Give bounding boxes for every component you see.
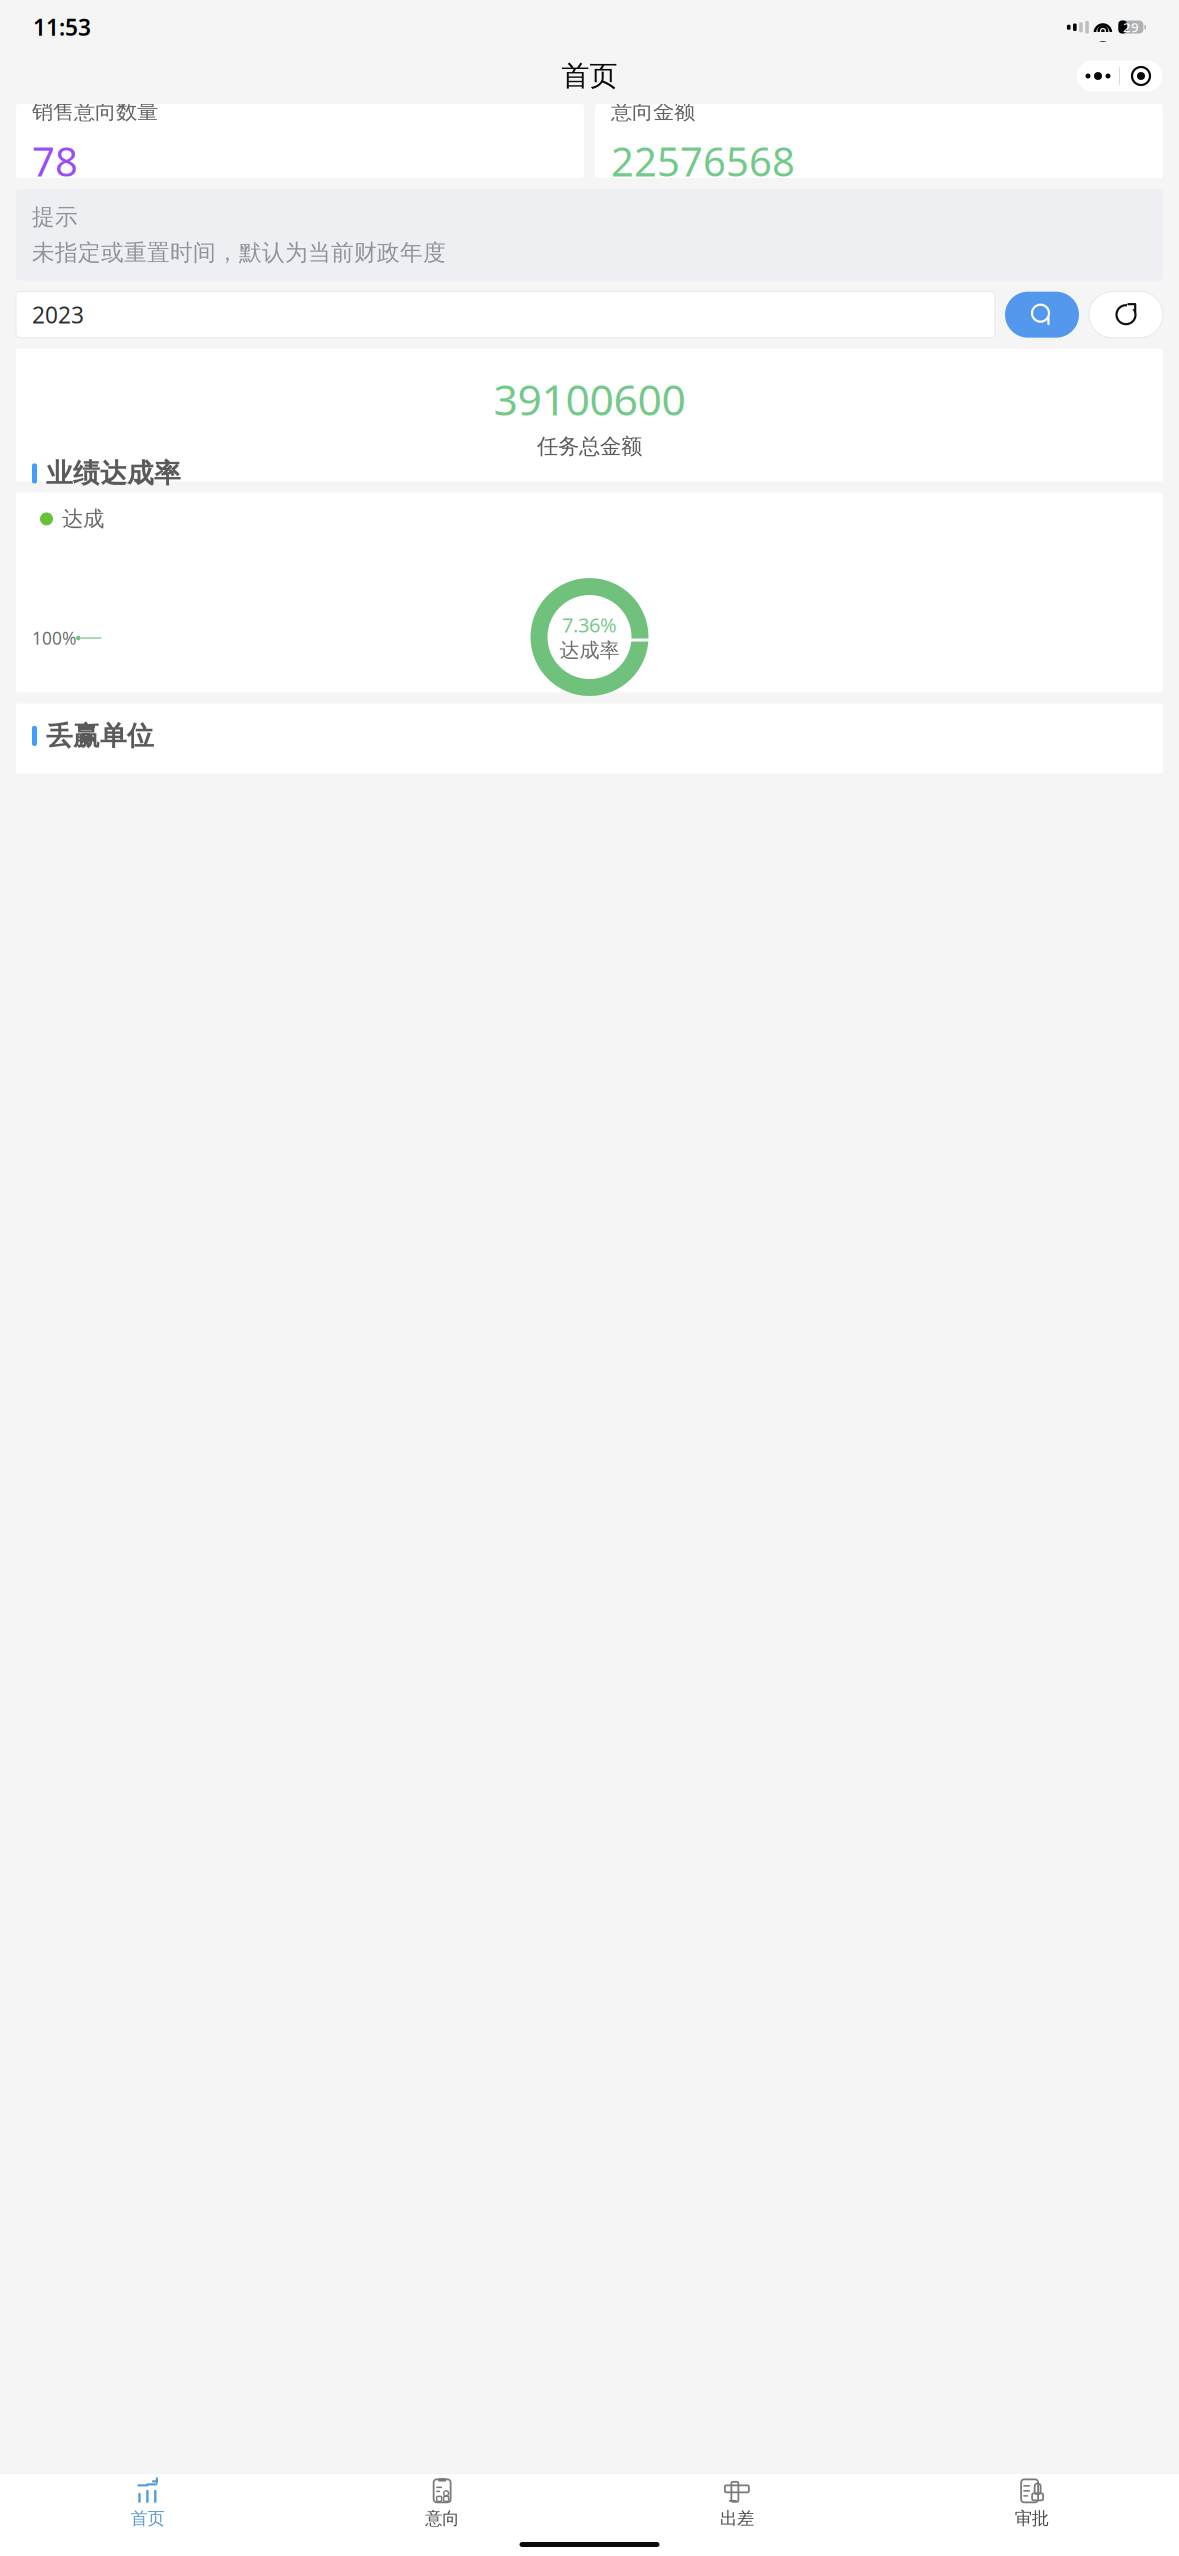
button[interactable]: Refresh: [1089, 292, 1163, 338]
staticText: 销售意向数量: [32, 98, 158, 124]
button[interactable]: 2023: [16, 292, 995, 338]
button[interactable]: 审批: [884, 2478, 1179, 2528]
staticText: 意向: [425, 2508, 459, 2529]
staticText: 达成: [62, 506, 104, 532]
staticText: 100%: [32, 626, 76, 649]
staticText: 出差: [720, 2508, 754, 2529]
button[interactable]: 意向: [295, 2478, 590, 2528]
staticText: 29: [1123, 18, 1139, 36]
staticText: 22576568: [611, 134, 795, 188]
staticText: 首页: [561, 59, 617, 93]
staticText: 提示: [32, 203, 78, 231]
button[interactable]: 出差: [589, 2478, 884, 2528]
staticText: 丢赢单位: [46, 719, 154, 752]
staticText: 业绩达成率: [46, 457, 181, 490]
button[interactable]: 首页: [0, 2478, 295, 2528]
staticText: 7.36%: [562, 611, 617, 638]
button[interactable]: Search: [1005, 292, 1079, 338]
staticText: 未指定或重置时间，默认为当前财政年度: [32, 239, 446, 267]
staticText: 达成率: [559, 638, 619, 663]
staticText: 11:53: [33, 12, 91, 42]
staticText: 2023: [32, 300, 84, 330]
staticText: 39100600: [493, 371, 685, 427]
staticText: 首页: [130, 2508, 164, 2529]
button[interactable]: Close: [1120, 60, 1162, 92]
staticText: 审批: [1015, 2508, 1049, 2529]
staticText: 78: [32, 134, 78, 188]
staticText: 意向金额: [611, 98, 695, 124]
button[interactable]: More: [1077, 60, 1119, 92]
staticText: 任务总金额: [537, 433, 642, 459]
